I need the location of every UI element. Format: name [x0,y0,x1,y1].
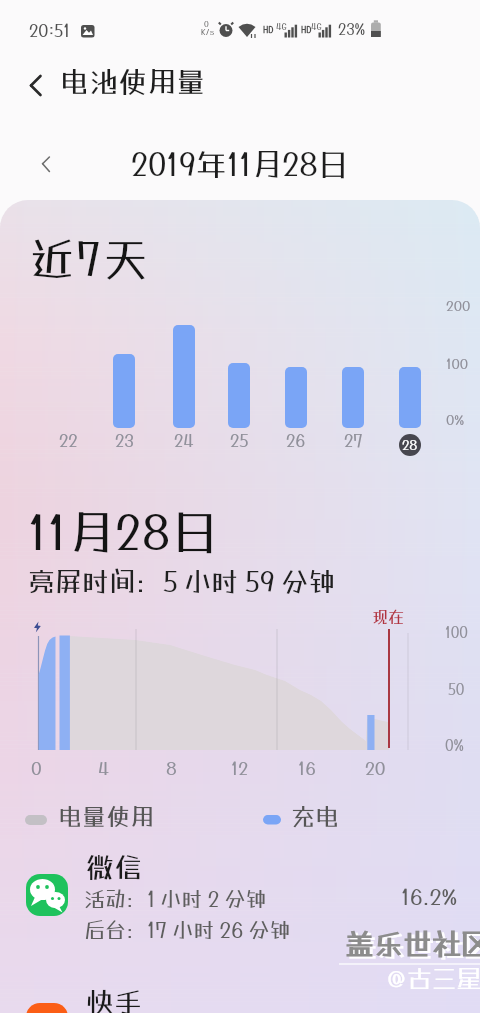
staticText: 26 [286,430,306,450]
staticText: K/s [201,27,215,36]
staticText: 24 [174,430,194,450]
staticText: 100 [445,624,468,641]
staticText: 4 [98,757,109,778]
staticText: 0% [446,411,465,428]
staticText: 充电 [291,802,339,830]
staticText: 电池使用量 [60,65,206,99]
staticText: HD [263,24,274,35]
staticText: @古三星 [386,963,480,992]
staticText: 盖乐世社区 [345,927,480,961]
staticText: 11月28日 [28,504,220,559]
staticText: 20:51 [29,20,71,40]
staticText: 后台：17 小时 26 分钟 [84,917,291,942]
staticText: 8 [166,757,177,778]
staticText: 16.2% [401,883,458,909]
staticText: 23 [115,430,134,450]
staticText: 4G [311,21,322,32]
staticText: 微信 [86,851,143,884]
staticText: 盖乐世社区 [348,929,480,963]
staticText: 23% [338,20,366,38]
staticText: 近7天 [30,233,151,285]
staticText: 电量使用 [58,802,154,830]
staticText: 16 [298,757,316,778]
staticText: 0% [445,737,464,754]
button[interactable] [16,66,54,104]
staticText: 0 [31,757,42,778]
staticText: 20 [365,757,386,778]
button[interactable] [28,145,66,183]
staticText: 快手 [86,986,143,1013]
staticText: 2019年11月28日 [131,146,349,183]
button[interactable] [0,975,480,1013]
staticText: 现在 [372,607,405,626]
staticText: 50 [448,681,465,698]
staticText: 22 [59,430,78,450]
button[interactable] [0,845,480,955]
staticText: 27 [344,430,363,450]
staticText: HD [301,24,312,35]
staticText: 200 [446,297,471,314]
staticText: 28 [402,437,418,453]
staticText: 100 [446,355,469,372]
staticText: 活动：1 小时 2 分钟 [84,886,267,911]
staticText: 25 [230,430,249,450]
staticText: 亮屏时间：5 小时 59 分钟 [28,565,336,597]
staticText: 12 [231,757,248,778]
staticText: 4G [276,21,287,32]
staticText: 0 [204,19,209,28]
